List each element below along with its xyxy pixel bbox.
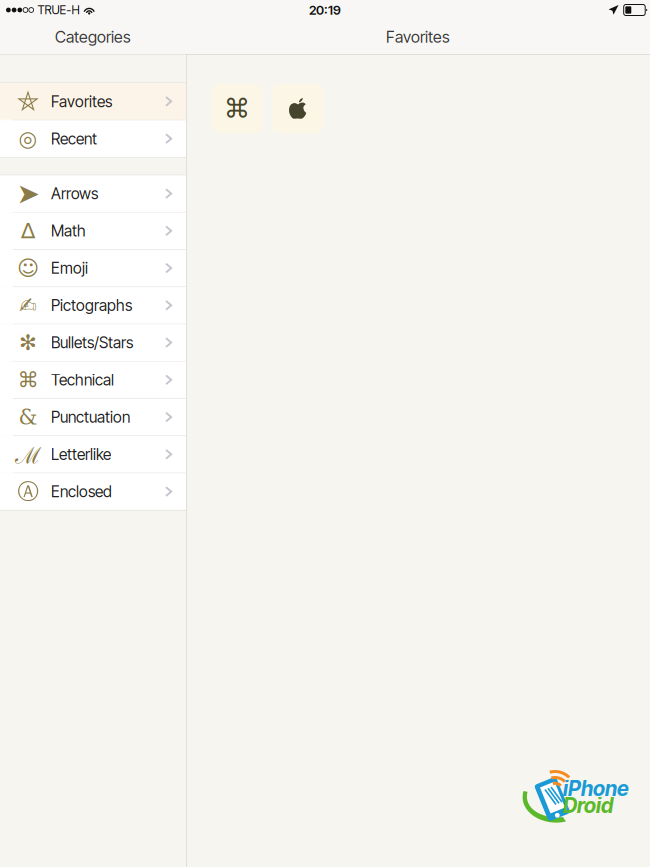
staticText: ∆ <box>21 218 35 243</box>
staticText: TRUE-H <box>38 3 80 17</box>
staticText: Enclosed <box>51 482 112 501</box>
staticText: ➤ <box>16 177 39 210</box>
staticText: iPhone <box>563 776 629 801</box>
staticText: Categories <box>55 27 131 47</box>
staticText: Arrows <box>51 184 98 203</box>
staticText: ⌘ <box>224 93 251 124</box>
staticText: Technical <box>51 370 114 389</box>
staticText: 20:19 <box>309 2 341 18</box>
staticText: Favorites <box>386 27 450 47</box>
staticText: Ⓐ <box>17 478 38 505</box>
staticText: & <box>18 405 37 430</box>
button[interactable]: ∆ <box>0 213 186 249</box>
staticText: ☺︎ <box>17 256 39 281</box>
button[interactable]: ➤ <box>0 175 186 212</box>
button[interactable]: ◎ <box>0 120 186 157</box>
button[interactable]: ℳ <box>0 436 186 473</box>
button[interactable]: ✍︎ <box>0 287 186 324</box>
staticText: Math <box>51 221 86 240</box>
staticText: ◎ <box>18 126 37 151</box>
button[interactable]: & <box>0 399 186 435</box>
staticText: ℳ <box>15 439 41 470</box>
staticText: Pictographs <box>51 296 132 315</box>
button[interactable] <box>272 84 323 133</box>
button[interactable]: Ⓐ <box>0 473 186 510</box>
button[interactable]: ☺︎ <box>0 250 186 286</box>
staticText: Favorites <box>51 92 112 111</box>
staticText: Punctuation <box>51 408 130 427</box>
staticText: ✍︎ <box>19 293 37 318</box>
staticText: ✻ <box>19 330 37 355</box>
button[interactable]: ⌘ <box>0 362 186 398</box>
button[interactable]: ⌘ <box>212 84 263 133</box>
staticText: Droid <box>563 793 613 818</box>
button[interactable]: ✻ <box>0 324 186 361</box>
staticText: Bullets/Stars <box>51 333 133 352</box>
staticText: ⌘ <box>17 367 38 392</box>
staticText: Emoji <box>51 259 88 278</box>
staticText: Recent <box>51 129 97 148</box>
staticText: Letterlike <box>51 445 111 464</box>
button[interactable]: Favorites <box>0 83 186 120</box>
